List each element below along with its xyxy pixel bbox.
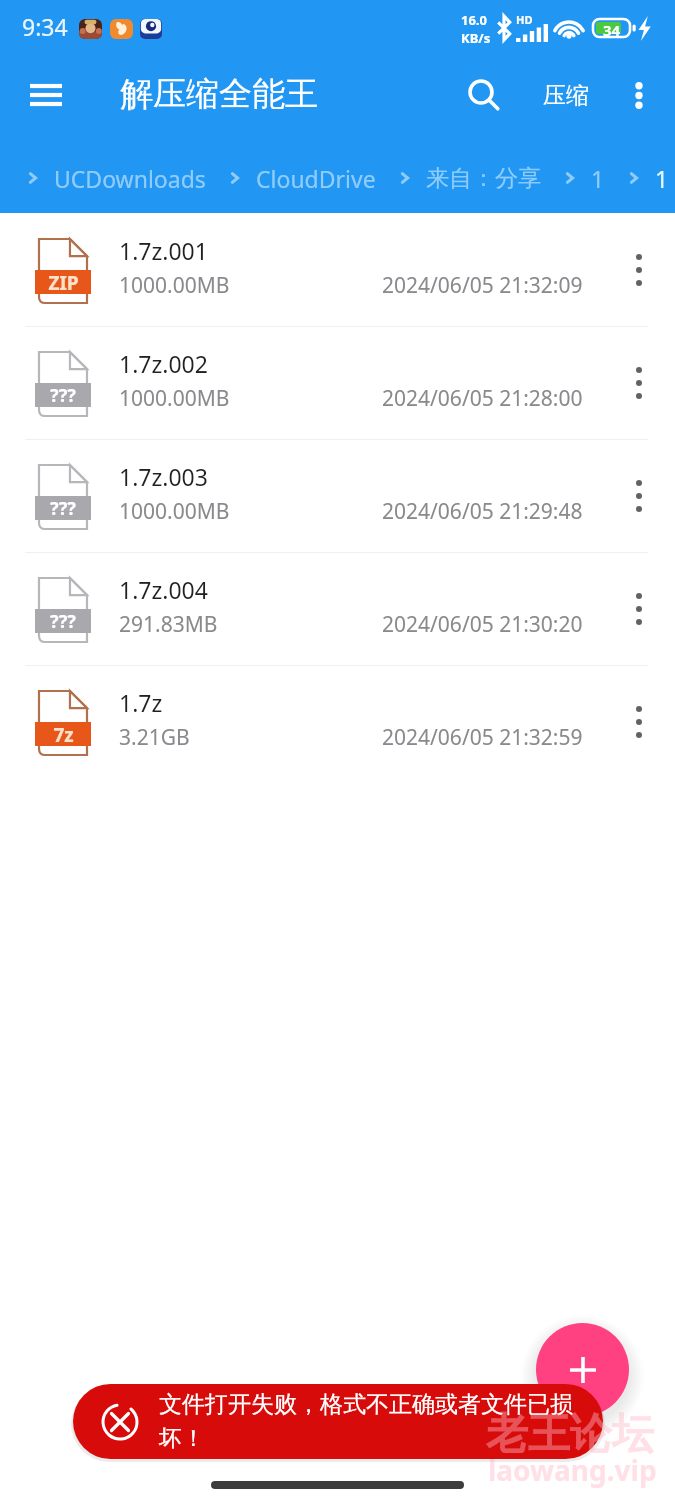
staticText: 2024/06/05 21:32:09: [382, 271, 583, 300]
staticText: ???: [50, 383, 76, 407]
staticText: HD: [516, 12, 533, 27]
staticText: ???: [50, 609, 76, 633]
staticText: 老王论坛: [486, 1408, 654, 1461]
button[interactable]: More options: [611, 440, 666, 552]
staticText: 1: [591, 163, 605, 194]
staticText: 1: [655, 163, 669, 194]
button[interactable]: ???: [0, 553, 675, 665]
staticText: 1.7z.002: [119, 348, 208, 379]
button[interactable]: 7z: [0, 666, 675, 778]
button[interactable]: Add: [536, 1323, 629, 1416]
staticText: 来自：分享: [426, 164, 541, 193]
staticText: 1000.00MB: [119, 384, 230, 413]
button[interactable]: More options: [611, 327, 666, 439]
staticText: 2024/06/05 21:30:20: [382, 610, 583, 639]
staticText: ???: [50, 496, 76, 520]
staticText: 9:34: [22, 11, 68, 42]
staticText: 16.0: [461, 11, 487, 29]
staticText: 文件打开失败，格式不正确或者文件已损坏！: [159, 1390, 589, 1453]
button[interactable]: 1: [589, 157, 607, 200]
button[interactable]: ZIP: [0, 214, 675, 326]
staticText: 压缩: [543, 81, 589, 110]
button[interactable]: ???: [0, 440, 675, 552]
staticText: 34: [603, 20, 621, 40]
staticText: 2024/06/05 21:32:59: [382, 723, 583, 752]
button[interactable]: Search: [453, 64, 511, 122]
button[interactable]: 压缩: [532, 63, 600, 127]
staticText: 1.7z.001: [119, 235, 208, 266]
button[interactable]: 1: [653, 157, 671, 200]
staticText: 2024/06/05 21:28:00: [382, 384, 583, 413]
staticText: 1000.00MB: [119, 271, 230, 300]
staticText: 2024/06/05 21:29:48: [382, 497, 583, 526]
staticText: CloudDrive: [256, 163, 376, 194]
button[interactable]: 来自：分享: [424, 158, 543, 199]
staticText: ZIP: [48, 270, 79, 294]
staticText: 1.7z.004: [119, 574, 208, 605]
staticText: 1000.00MB: [119, 497, 230, 526]
staticText: 解压缩全能王: [120, 73, 318, 115]
staticText: KB/s: [461, 29, 491, 47]
button[interactable]: More options: [611, 553, 666, 665]
button[interactable]: More options: [611, 666, 666, 778]
staticText: 7z: [53, 722, 74, 746]
button[interactable]: 文件打开失败，格式不正确或者文件已损坏！: [73, 1384, 603, 1459]
button[interactable]: CloudDrive: [254, 157, 378, 200]
button[interactable]: More options: [611, 214, 666, 326]
button[interactable]: UCDownloads: [52, 157, 208, 200]
staticText: 291.83MB: [119, 610, 218, 639]
staticText: UCDownloads: [54, 163, 206, 194]
staticText: 1.7z: [119, 687, 163, 718]
button[interactable]: Menu: [8, 59, 84, 131]
staticText: 1.7z.003: [119, 461, 208, 492]
button[interactable]: ???: [0, 327, 675, 439]
button[interactable]: More options: [612, 59, 666, 131]
staticText: laowang.vip: [488, 1451, 657, 1489]
staticText: 3.21GB: [119, 723, 190, 752]
